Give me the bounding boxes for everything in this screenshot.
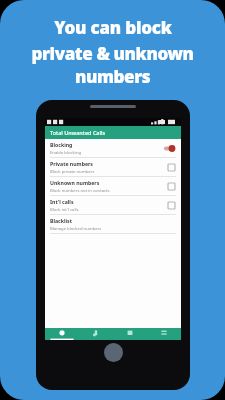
staticText: Enable blocking	[50, 150, 82, 156]
button[interactable]: Private numbers	[45, 158, 181, 176]
staticText: Block int'l calls	[50, 207, 79, 213]
staticText: Blacklist	[50, 217, 72, 224]
button[interactable]: More	[147, 328, 181, 340]
staticText: private & unknown numbers	[0, 42, 225, 88]
button[interactable]: Home	[104, 343, 123, 362]
staticText: Private numbers	[50, 160, 93, 167]
button[interactable]: Checkbox, unchecked	[166, 181, 176, 191]
button[interactable]: Total Unwanted Calls	[45, 126, 181, 139]
button[interactable]: Checkbox, unchecked	[166, 200, 176, 210]
staticText: You can block	[54, 16, 172, 39]
button[interactable]: Log	[79, 328, 113, 340]
staticText: Int'l calls	[50, 198, 74, 205]
button[interactable]: Int'l calls	[45, 196, 181, 214]
staticText: Block numbers not in contacts	[50, 188, 110, 194]
staticText: Block private numbers	[50, 169, 95, 175]
button[interactable]: Calls	[45, 328, 79, 340]
button[interactable]: Blocking switch, on	[163, 144, 176, 153]
button[interactable]: Blacklist	[45, 215, 181, 233]
staticText: Blocking	[50, 141, 73, 148]
staticText: Unknown numbers	[50, 179, 100, 186]
staticText: Manage blocked numbers	[50, 226, 102, 232]
button[interactable]: Checkbox, unchecked	[166, 162, 176, 172]
button[interactable]: Stats	[113, 328, 147, 340]
button[interactable]: Unknown numbers	[45, 177, 181, 195]
button[interactable]: Blocking	[45, 139, 181, 157]
staticText: Total Unwanted Calls	[50, 129, 106, 136]
